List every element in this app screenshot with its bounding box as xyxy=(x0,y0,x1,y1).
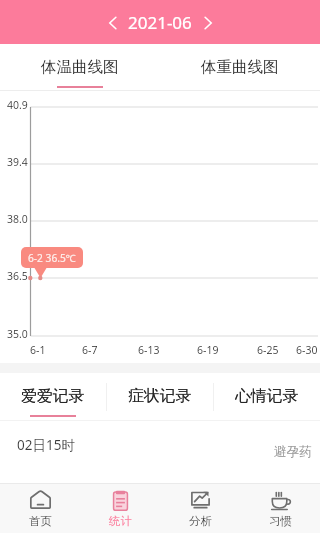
staticText: 心情记录 xyxy=(235,386,299,406)
staticText: 习惯 xyxy=(269,514,292,528)
button[interactable]: 心情记录 xyxy=(214,373,320,421)
staticText: 36.5 xyxy=(7,269,28,283)
button[interactable]: 体温曲线图 xyxy=(0,44,160,91)
staticText: 爱爱记录 xyxy=(21,386,85,406)
staticText: 39.4 xyxy=(7,155,28,169)
staticText: 症状记录 xyxy=(128,386,192,406)
staticText: 6-13 xyxy=(138,343,160,357)
button[interactable]: 分析 xyxy=(160,484,240,533)
staticText: 6-19 xyxy=(197,343,219,357)
button[interactable]: 02日15时 xyxy=(0,421,320,471)
staticText: 6-25 xyxy=(257,343,279,357)
staticText: 症状记录 xyxy=(128,386,192,406)
staticText: 6-7 xyxy=(82,343,98,357)
staticText: 统计 xyxy=(109,514,132,528)
staticText: 2021-06 xyxy=(128,11,192,34)
staticText: 体温曲线图 xyxy=(41,57,119,77)
button[interactable]: 爱爱记录 xyxy=(0,373,106,421)
staticText: 分析 xyxy=(189,514,212,528)
button[interactable]: 习惯 xyxy=(240,484,320,533)
button[interactable]: Next month xyxy=(194,9,221,36)
staticText: 6-30 xyxy=(296,343,318,357)
staticText: 35.0 xyxy=(7,327,28,341)
staticText: 38.0 xyxy=(7,212,28,226)
staticText: 避孕药 xyxy=(274,444,312,460)
staticText: 6-2 36.5℃ xyxy=(28,251,76,265)
staticText: 首页 xyxy=(29,514,52,528)
button[interactable]: 统计 xyxy=(80,484,160,533)
button[interactable]: Previous month xyxy=(99,9,126,36)
button[interactable]: 症状记录 xyxy=(107,373,213,421)
staticText: 体重曲线图 xyxy=(201,57,279,77)
staticText: 02日15时 xyxy=(17,436,75,454)
button[interactable]: 体重曲线图 xyxy=(160,44,320,91)
button[interactable]: 首页 xyxy=(0,484,80,533)
staticText: 心情记录 xyxy=(235,386,299,406)
staticText: 6-1 xyxy=(30,343,46,357)
staticText: 爱爱记录 xyxy=(21,386,85,406)
staticText: 40.9 xyxy=(7,98,28,112)
